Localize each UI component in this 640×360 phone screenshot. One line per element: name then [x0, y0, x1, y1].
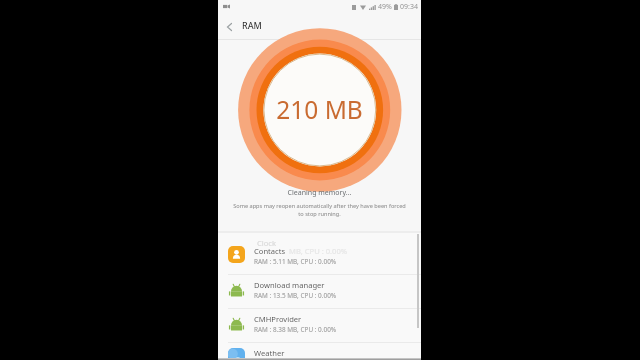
staticText: Clock: [257, 238, 277, 248]
staticText: RAM : 8.38 MB, CPU : 0.00%: [254, 325, 337, 334]
staticText: 49%: [378, 2, 392, 12]
staticText: 210 MB: [218, 93, 421, 126]
button[interactable]: Back: [220, 17, 239, 36]
staticText: RAM: [242, 19, 262, 31]
button[interactable]: Contacts: [218, 241, 421, 275]
staticText: Contacts: [254, 246, 286, 256]
button[interactable]: Download manager: [218, 275, 421, 309]
staticText: RAM : 13.5 MB, CPU : 0.00%: [254, 291, 337, 300]
button[interactable]: CMHProvider: [218, 309, 421, 343]
button[interactable]: Weather: [218, 343, 421, 360]
staticText: Download manager: [254, 280, 325, 290]
staticText: RAM : 5.11 MB, CPU : 0.00%: [254, 257, 337, 266]
staticText: 09:34: [400, 2, 418, 12]
staticText: Some apps may reopen automatically after…: [218, 202, 421, 218]
staticText: MB, CPU : 0.00%: [289, 246, 348, 256]
staticText: CMHProvider: [254, 314, 302, 324]
staticText: Cleaning memory...: [218, 188, 421, 198]
staticText: Weather: [254, 348, 285, 358]
